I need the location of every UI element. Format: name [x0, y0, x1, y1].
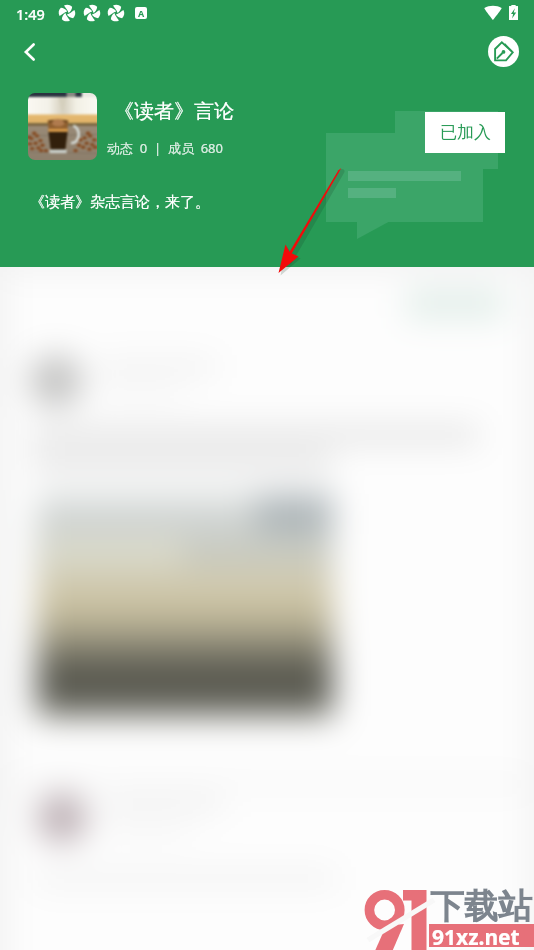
button[interactable]: Write post — [488, 36, 519, 67]
staticText: 1:49 — [16, 4, 45, 24]
staticText: A — [138, 7, 145, 19]
staticText: 91xz.net — [432, 923, 520, 950]
staticText: 下载站 — [430, 885, 532, 928]
staticText: 动态 0 | 成员 680 — [107, 139, 223, 157]
staticText: 《读者》杂志言论，来了。 — [30, 193, 210, 212]
staticText: 《读者》言论 — [114, 99, 234, 124]
staticText: 已加入 — [440, 122, 491, 143]
button[interactable]: Back — [8, 30, 52, 74]
button[interactable]: 已加入 — [425, 112, 505, 153]
